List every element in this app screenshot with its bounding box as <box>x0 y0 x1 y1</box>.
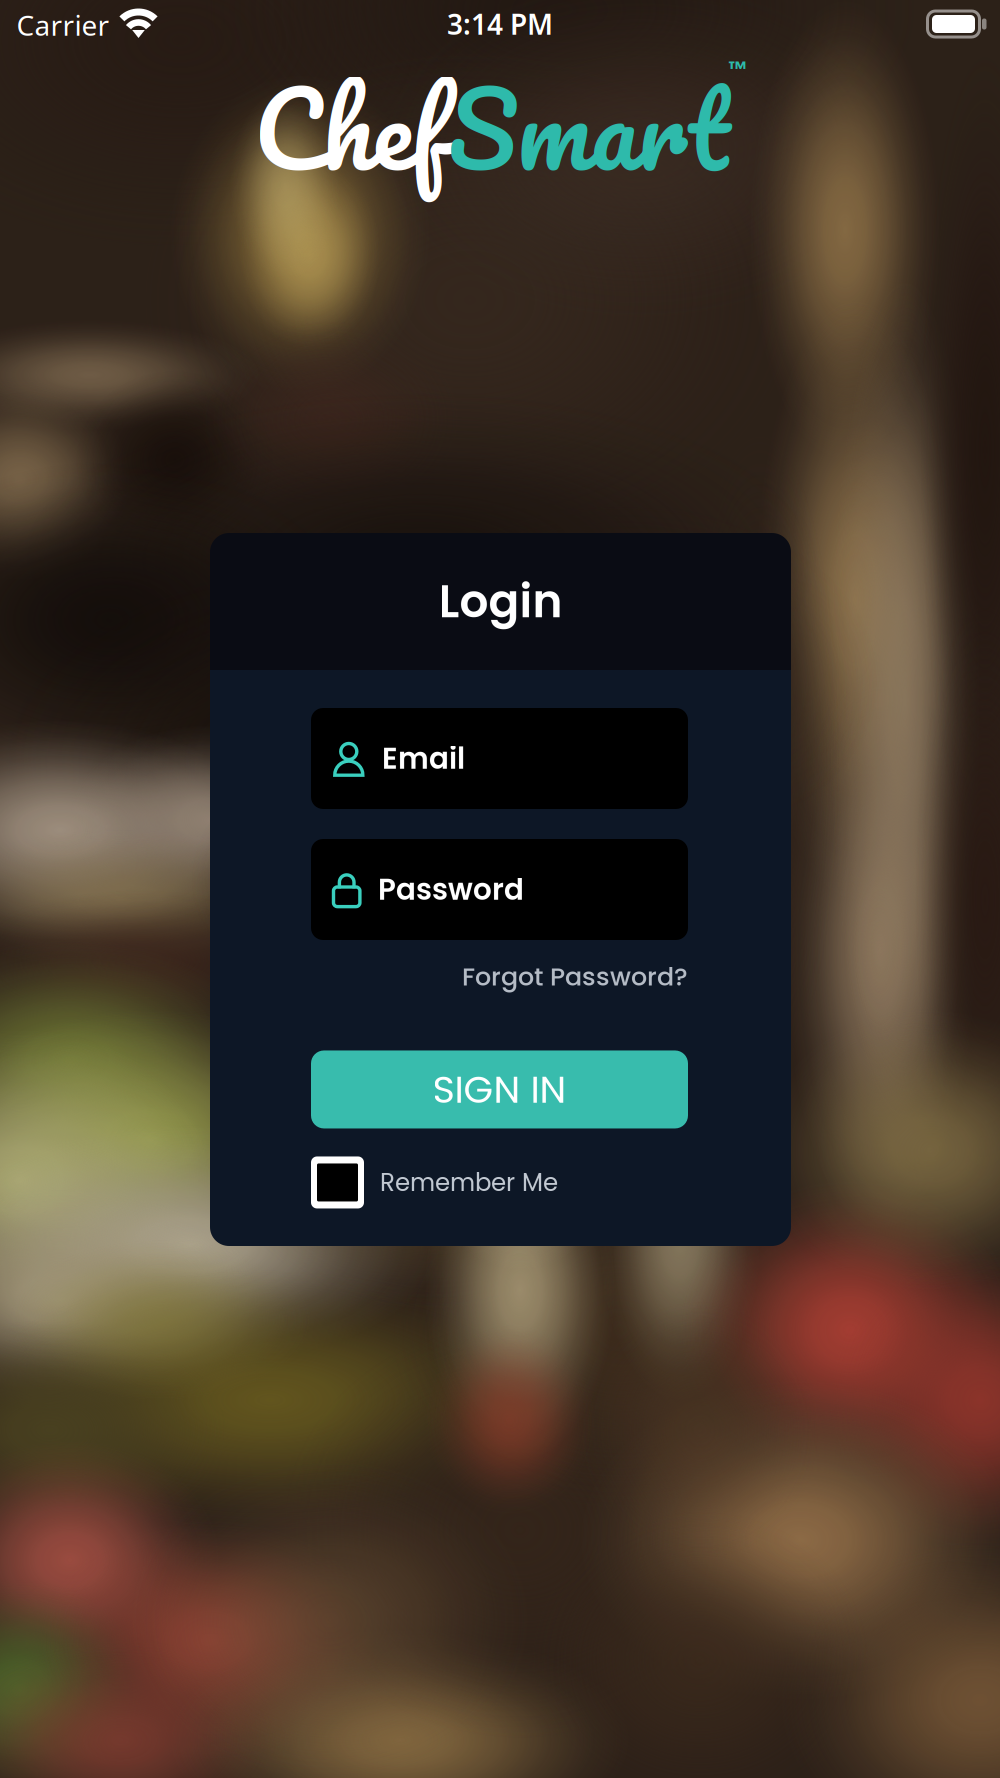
button[interactable]: SIGN IN <box>311 1050 688 1128</box>
staticText: Password <box>378 869 524 910</box>
staticText: ™ <box>728 54 746 84</box>
staticText: Smart <box>447 40 728 216</box>
staticText: Login <box>438 570 562 633</box>
staticText: Forgot Password? <box>462 959 688 994</box>
button[interactable]: Remember Me <box>311 1156 688 1208</box>
staticText: 3:14 PM <box>447 5 553 43</box>
staticText: Remember Me <box>380 1165 558 1200</box>
button[interactable]: Password <box>311 839 688 940</box>
staticText: Chef <box>253 40 447 216</box>
button[interactable]: Forgot Password? <box>462 959 688 994</box>
staticText: Email <box>382 738 465 779</box>
staticText: SIGN IN <box>432 1063 566 1116</box>
button[interactable]: Email <box>311 708 688 809</box>
staticText: Carrier <box>16 6 109 44</box>
